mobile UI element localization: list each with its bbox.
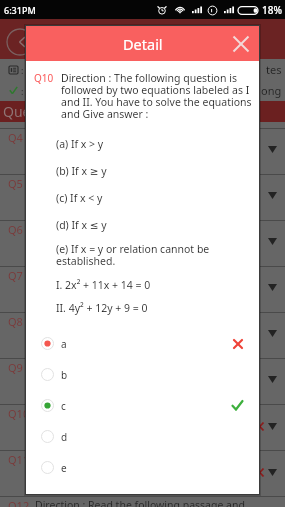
button[interactable]: Q12 [0, 497, 285, 507]
staticText: Q5 [8, 176, 23, 191]
staticText: Q7 [8, 268, 23, 283]
staticText: d [61, 430, 68, 444]
staticText: (e) If x = y or relation cannot be estab… [56, 242, 247, 268]
staticText: Q10 [8, 406, 30, 421]
staticText: Direction : Read the following passage a… [35, 498, 245, 507]
staticText: Detail [123, 34, 163, 54]
button[interactable]: Q9 [0, 359, 285, 405]
staticText: Q6 [8, 222, 23, 237]
button[interactable]: Q4 [0, 129, 285, 175]
staticText: (a) If x > y [56, 137, 104, 151]
staticText: Direction : The following question is fo… [61, 71, 253, 121]
staticText: (c) If x < y [56, 191, 103, 205]
button[interactable]: Q6 [0, 221, 285, 267]
button[interactable]: Q5 [0, 175, 285, 221]
staticText: Q11 [8, 452, 30, 467]
button[interactable]: Back [6, 28, 34, 56]
staticText: Q8 [8, 314, 23, 329]
staticText: Q9 [8, 360, 23, 375]
staticText: Q4 [8, 130, 23, 145]
button[interactable]: Q11 [0, 451, 285, 497]
staticText: II. 4y² + 12y + 9 = 0 [56, 301, 148, 315]
button[interactable]: d [26, 421, 259, 452]
button[interactable]: Q10 [0, 405, 285, 451]
button[interactable]: a [26, 328, 259, 359]
staticText: ong [261, 83, 282, 98]
staticText: Q12 [8, 498, 30, 507]
staticText: tes [266, 62, 282, 77]
staticText: Q10 [34, 71, 61, 85]
button[interactable]: c [26, 390, 259, 421]
button[interactable]: Q8 [0, 313, 285, 359]
staticText: : [21, 85, 24, 97]
staticText: Que [3, 102, 31, 121]
button[interactable]: e [26, 452, 259, 483]
button[interactable]: b [26, 359, 259, 390]
staticText: c [61, 399, 66, 413]
staticText: 18% [262, 3, 282, 17]
staticText: (d) If x ≤ y [56, 218, 107, 232]
staticText: e [61, 461, 67, 475]
staticText: a [61, 337, 67, 351]
staticText: (b) If x ≥ y [56, 164, 107, 178]
button[interactable]: Close [228, 31, 254, 57]
staticText: b [61, 368, 68, 382]
button[interactable]: Q7 [0, 267, 285, 313]
staticText: I. 2x² + 11x + 14 = 0 [56, 278, 151, 292]
staticText: : [21, 64, 24, 76]
staticText: 6:31PM [4, 4, 36, 16]
